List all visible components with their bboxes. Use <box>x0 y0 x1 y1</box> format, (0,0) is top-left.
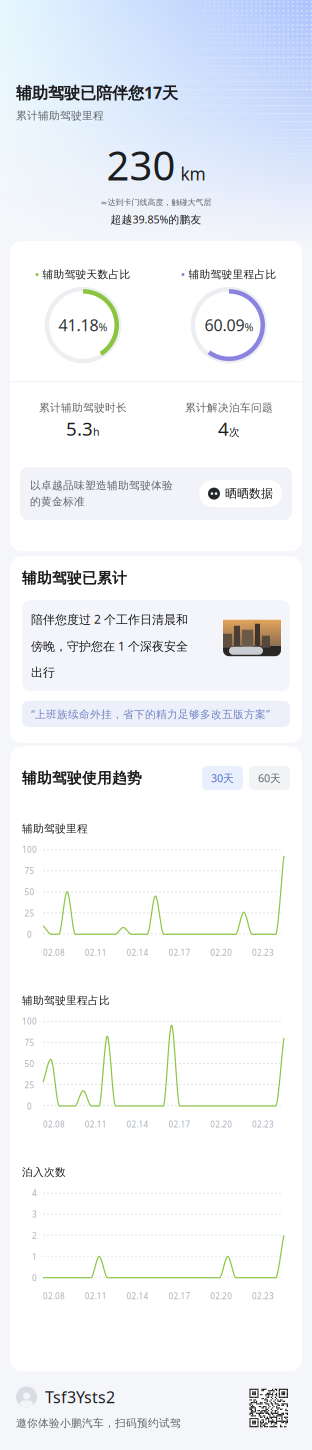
staticText: 02.23 <box>252 1291 274 1301</box>
staticText: 02.14 <box>127 1291 149 1301</box>
staticText: km <box>180 162 205 185</box>
button[interactable]: 60天 <box>249 766 290 790</box>
staticText: 75 <box>24 866 34 876</box>
staticText: 02.17 <box>168 1119 190 1130</box>
staticText: 5.3 <box>66 416 93 441</box>
staticText: 0 <box>32 1273 37 1283</box>
staticText: 50 <box>24 887 34 897</box>
button[interactable]: 30天 <box>202 766 243 790</box>
staticText: 02.20 <box>210 1119 232 1130</box>
staticText: 0 <box>27 929 32 940</box>
staticText: 02.17 <box>168 1291 190 1301</box>
staticText: 2 <box>32 1230 37 1241</box>
staticText: 02.11 <box>85 1291 107 1301</box>
staticText: 泊入次数 <box>22 1166 66 1179</box>
staticText: 邀你体验小鹏汽车，扫码预约试驾 <box>16 1417 181 1430</box>
staticText: 02.11 <box>85 1119 107 1130</box>
staticText: 4 <box>218 416 229 441</box>
staticText: 02.20 <box>210 947 232 958</box>
staticText: 41.18 <box>58 314 98 336</box>
staticText: 辅助驾驶已累计 <box>22 569 127 587</box>
staticText: 0 <box>27 1101 32 1112</box>
staticText: 辅助驾驶里程 <box>22 822 88 835</box>
staticText: Tsf3Ysts2 <box>45 1386 115 1407</box>
staticText: 的黄金标准 <box>30 495 85 508</box>
staticText: 75 <box>24 1037 34 1048</box>
staticText: 60.09 <box>204 314 244 336</box>
staticText: h <box>93 425 100 439</box>
staticText: 辅助驾驶里程占比 <box>188 268 276 281</box>
staticText: 辅助驾驶已陪伴您17天 <box>16 82 178 103</box>
staticText: % <box>244 320 253 334</box>
staticText: % <box>98 320 107 334</box>
staticText: 辅助驾驶天数占比 <box>42 268 130 281</box>
staticText: 02.17 <box>168 947 190 958</box>
staticText: 辅助驾驶里程占比 <box>22 994 110 1007</box>
staticText: 辅助驾驶使用趋势 <box>22 769 142 787</box>
staticText: “上班族续命外挂，省下的精力足够多改五版方案” <box>31 707 270 721</box>
staticText: 3 <box>32 1209 37 1220</box>
staticText: 傍晚，守护您在 1 个深夜安全 <box>31 638 188 654</box>
staticText: 晒晒数据 <box>225 486 273 501</box>
staticText: 以卓越品味塑造辅助驾驶体验 <box>30 479 173 492</box>
staticText: 02.11 <box>85 947 107 958</box>
staticText: 100 <box>22 1016 37 1027</box>
staticText: 出行 <box>31 665 55 680</box>
staticText: 1 <box>32 1252 37 1262</box>
staticText: 陪伴您度过 2 个工作日清晨和 <box>31 611 188 627</box>
staticText: 次 <box>229 426 240 439</box>
staticText: 02.08 <box>43 1291 65 1301</box>
staticText: 25 <box>24 908 34 919</box>
staticText: 累计辅助驾驶时长 <box>39 401 127 414</box>
staticText: 02.23 <box>252 947 274 958</box>
staticText: 02.20 <box>210 1291 232 1301</box>
staticText: 4 <box>32 1188 37 1198</box>
staticText: 02.08 <box>43 1119 65 1130</box>
staticText: 25 <box>24 1080 34 1090</box>
staticText: 30天 <box>211 771 234 785</box>
staticText: 02.08 <box>43 947 65 958</box>
staticText: 累计解决泊车问题 <box>185 401 273 414</box>
staticText: 02.14 <box>127 947 149 958</box>
staticText: 02.14 <box>127 1119 149 1130</box>
staticText: 超越39.85%的鹏友 <box>110 212 201 226</box>
staticText: 100 <box>22 844 37 855</box>
staticText: 累计辅助驾驶里程 <box>16 109 104 122</box>
staticText: 230 <box>106 138 175 191</box>
button[interactable]: 晒晒数据 <box>199 480 282 507</box>
staticText: 50 <box>24 1059 34 1069</box>
staticText: ≈达到卡门线高度，触碰大气层 <box>100 197 211 207</box>
staticText: 60天 <box>258 771 281 785</box>
staticText: 02.23 <box>252 1119 274 1130</box>
